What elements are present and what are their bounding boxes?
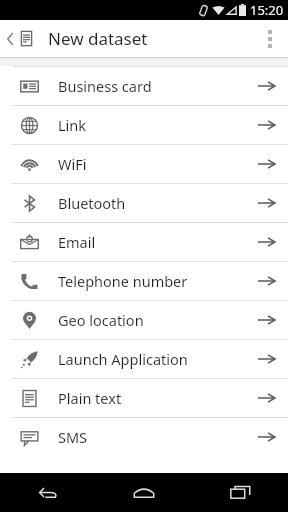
staticText: Bluetooth [58,193,244,213]
button[interactable]: Telephone number [0,262,288,300]
staticText: Link [58,115,244,135]
staticText: Launch Application [58,349,244,369]
staticText: Plain text [58,388,244,408]
button[interactable]: Link [0,106,288,144]
button[interactable]: Business card [0,67,288,105]
button[interactable]: WiFi [0,145,288,183]
button[interactable]: Recent apps [192,473,288,512]
staticText: Geo location [58,310,244,330]
button[interactable]: Email [0,223,288,261]
staticText: WiFi [58,154,244,174]
button[interactable]: Plain text [0,379,288,417]
staticText: SMS [58,427,244,447]
button[interactable]: Navigate up [6,20,34,57]
staticText: Telephone number [58,271,244,291]
button[interactable]: Bluetooth [0,184,288,222]
staticText: Business card [58,76,244,96]
button[interactable]: Launch Application [0,340,288,378]
button[interactable]: Back [0,473,96,512]
button[interactable]: Home [96,473,192,512]
button[interactable]: Geo location [0,301,288,339]
staticText: New dataset [48,27,252,50]
button[interactable]: More options [252,20,288,57]
staticText: Email [58,232,244,252]
staticText: 15:20 [250,1,284,19]
button[interactable]: SMS [0,418,288,456]
